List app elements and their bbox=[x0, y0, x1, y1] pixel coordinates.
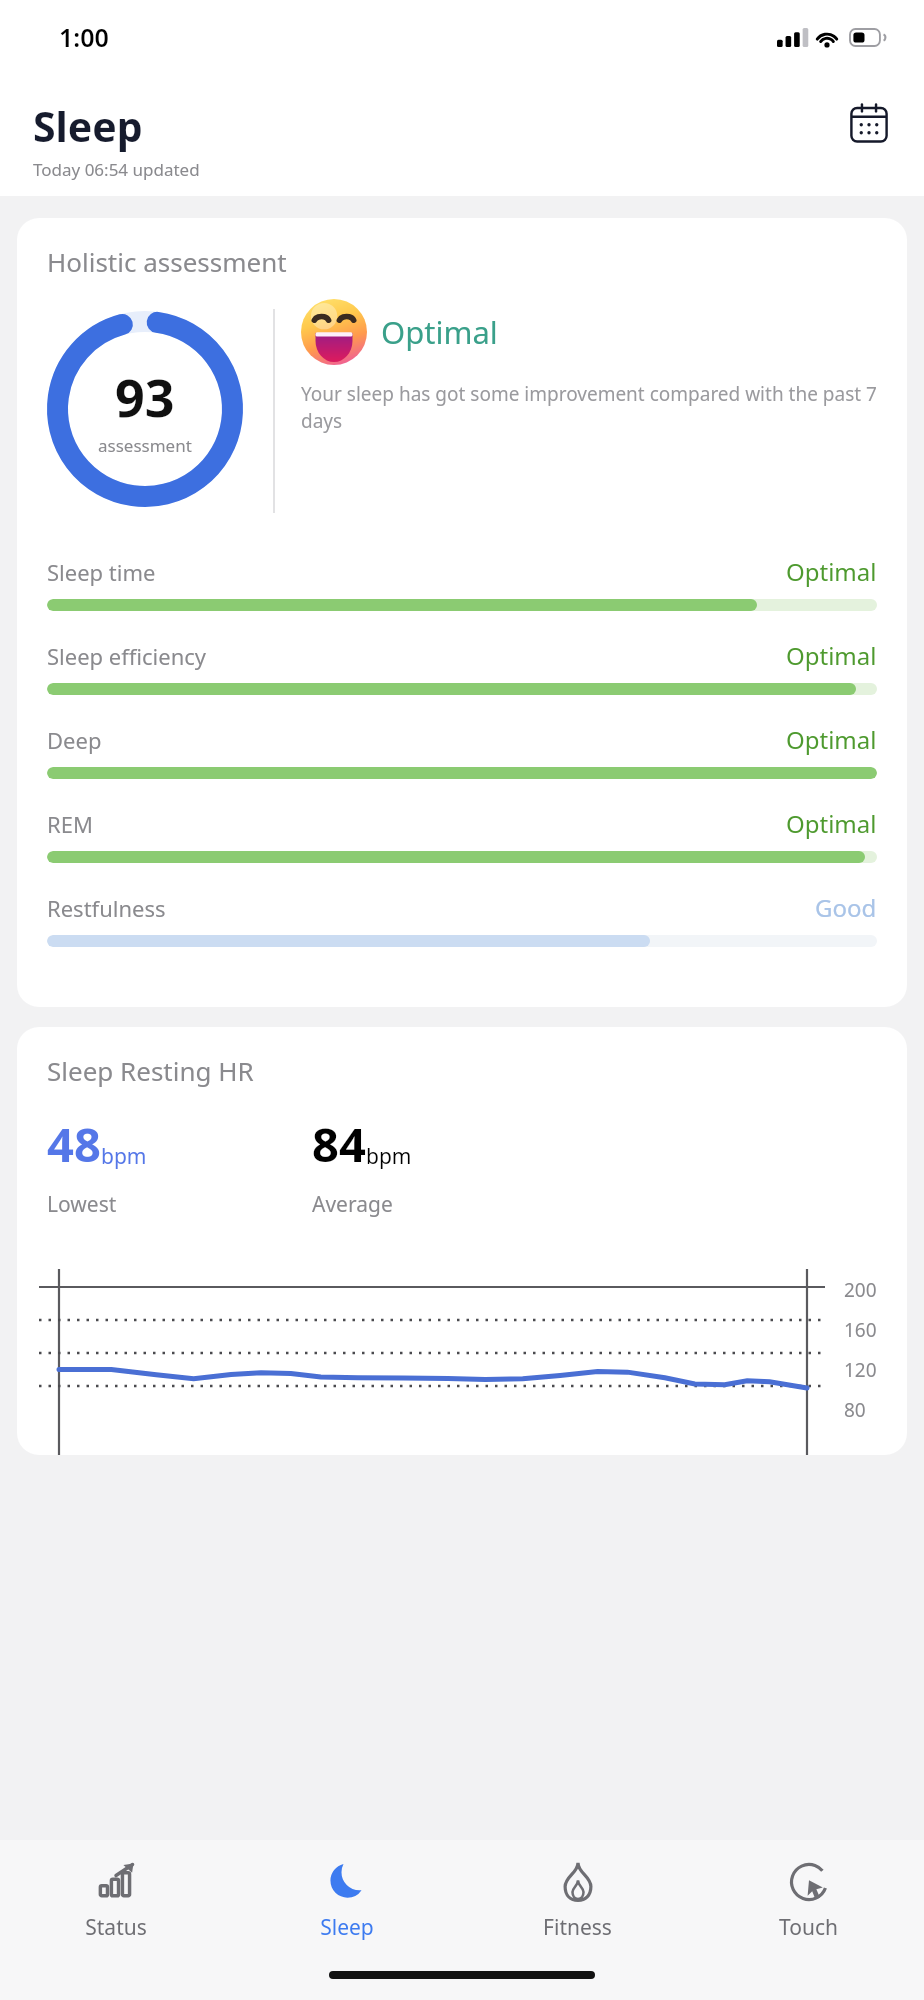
staticText: assessment bbox=[98, 434, 192, 457]
staticText: Optimal bbox=[786, 555, 877, 588]
staticText: Deep bbox=[47, 725, 786, 755]
staticText: 93 bbox=[115, 361, 175, 432]
staticText: Good bbox=[815, 891, 877, 924]
staticText: Fitness bbox=[543, 1913, 612, 1942]
button[interactable]: REM bbox=[17, 807, 907, 891]
staticText: Optimal bbox=[381, 311, 498, 353]
staticText: 120 bbox=[844, 1357, 877, 1383]
staticText: Optimal bbox=[786, 807, 877, 840]
staticText: Today 06:54 updated bbox=[33, 158, 200, 181]
staticText: REM bbox=[47, 809, 786, 839]
staticText: Restfulness bbox=[47, 893, 815, 923]
staticText: Sleep Resting HR bbox=[47, 1053, 254, 1088]
staticText: 80 bbox=[844, 1397, 866, 1423]
staticText: Your sleep has got some improvement comp… bbox=[301, 381, 889, 434]
button[interactable]: Deep bbox=[17, 723, 907, 807]
staticText: Sleep bbox=[33, 98, 143, 154]
staticText: 48 bbox=[47, 1112, 101, 1176]
button[interactable]: Restfulness bbox=[17, 891, 907, 975]
staticText: Lowest bbox=[47, 1190, 117, 1219]
staticText: 84 bbox=[312, 1112, 366, 1176]
staticText: Optimal bbox=[786, 639, 877, 672]
staticText: Touch bbox=[779, 1913, 838, 1942]
button[interactable]: Sleep bbox=[231, 1840, 462, 1960]
button[interactable]: Calendar bbox=[843, 97, 895, 149]
staticText: Sleep efficiency bbox=[47, 641, 786, 671]
staticText: 1:00 bbox=[59, 20, 109, 54]
button[interactable]: Holistic assessment bbox=[17, 218, 907, 1007]
staticText: 200 bbox=[844, 1277, 877, 1303]
staticText: Holistic assessment bbox=[47, 244, 287, 279]
staticText: bpm bbox=[101, 1142, 147, 1171]
button[interactable]: Sleep Resting HR bbox=[17, 1027, 907, 1455]
button[interactable]: Sleep efficiency bbox=[17, 639, 907, 723]
button[interactable]: Sleep time bbox=[17, 555, 907, 639]
staticText: Status bbox=[85, 1913, 147, 1942]
staticText: Sleep time bbox=[47, 557, 786, 587]
staticText: 160 bbox=[844, 1317, 877, 1343]
staticText: Average bbox=[312, 1190, 393, 1219]
button[interactable]: Status bbox=[0, 1840, 231, 1960]
button[interactable]: Touch bbox=[693, 1840, 924, 1960]
staticText: Sleep bbox=[320, 1913, 374, 1942]
staticText: bpm bbox=[366, 1142, 412, 1171]
staticText: Optimal bbox=[786, 723, 877, 756]
button[interactable]: Fitness bbox=[462, 1840, 693, 1960]
